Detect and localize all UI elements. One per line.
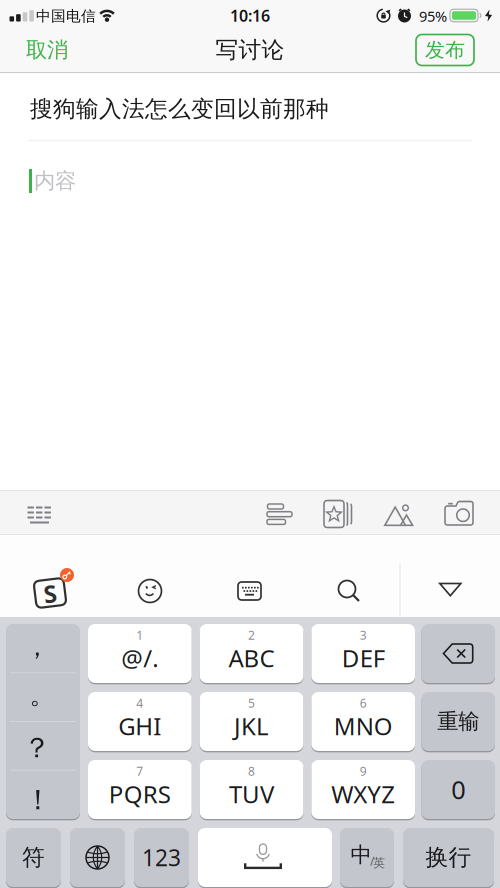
- staticText: 搜狗输入法怎么变回以前那种: [30, 95, 329, 123]
- button[interactable]: 格式: [22, 501, 56, 527]
- button[interactable]: 拍照: [445, 501, 475, 527]
- staticText: @/.: [121, 642, 158, 674]
- staticText: MNO: [334, 710, 393, 742]
- staticText: 1: [136, 627, 143, 643]
- button[interactable]: 取消: [12, 30, 82, 70]
- staticText: 6: [360, 695, 367, 711]
- staticText: TUV: [229, 778, 274, 810]
- button[interactable]: 123: [134, 828, 189, 887]
- staticText: JKL: [234, 710, 269, 742]
- button[interactable]: DEF: [311, 624, 415, 683]
- button[interactable]: PQRS: [88, 760, 192, 819]
- button[interactable]: 换行: [403, 828, 494, 887]
- button[interactable]: WXYZ: [311, 760, 415, 819]
- staticText: 95%: [419, 6, 447, 26]
- staticText: 发布: [425, 38, 465, 62]
- button[interactable]: 搜狗输入法: [26, 567, 78, 613]
- staticText: GHI: [118, 710, 161, 742]
- staticText: 重输: [437, 708, 479, 735]
- staticText: 换行: [425, 844, 471, 871]
- staticText: S: [43, 578, 56, 609]
- staticText: 中: [350, 842, 371, 868]
- staticText: /: [370, 853, 374, 869]
- button[interactable]: 标点: [6, 624, 80, 819]
- button[interactable]: JKL: [200, 692, 303, 751]
- button[interactable]: 表情: [137, 578, 163, 604]
- button[interactable]: 0: [421, 760, 495, 819]
- button[interactable]: 删除: [421, 624, 495, 683]
- staticText: 2: [248, 627, 255, 643]
- button[interactable]: 卡片: [323, 499, 355, 529]
- button[interactable]: 重输: [421, 692, 495, 751]
- staticText: ABC: [228, 642, 274, 674]
- button[interactable]: 图片: [384, 502, 416, 526]
- staticText: 10:16: [230, 5, 270, 26]
- staticText: 5: [248, 695, 255, 711]
- staticText: 英: [373, 856, 385, 870]
- button[interactable]: 中/英: [340, 828, 394, 887]
- button[interactable]: 排版: [265, 502, 293, 526]
- staticText: 。: [29, 679, 54, 710]
- staticText: WXYZ: [331, 778, 395, 810]
- button[interactable]: ABC: [200, 624, 303, 683]
- staticText: 取消: [26, 37, 68, 63]
- staticText: DEF: [342, 642, 385, 674]
- staticText: 7: [136, 763, 143, 779]
- staticText: 0: [451, 773, 465, 806]
- button[interactable]: 切换输入法: [70, 828, 125, 887]
- staticText: 符: [22, 844, 45, 871]
- staticText: ？: [23, 731, 51, 765]
- button[interactable]: 发布: [416, 34, 474, 65]
- button[interactable]: 空格: [198, 828, 332, 887]
- staticText: ，: [24, 631, 49, 662]
- staticText: 9: [360, 763, 367, 779]
- button[interactable]: TUV: [200, 760, 303, 819]
- staticText: 内容: [34, 168, 76, 194]
- staticText: 8: [248, 763, 255, 779]
- button[interactable]: @/.: [88, 624, 192, 683]
- button[interactable]: 键盘切换: [236, 580, 262, 602]
- staticText: 123: [142, 842, 181, 872]
- button[interactable]: 符: [6, 828, 61, 887]
- staticText: ！: [24, 783, 52, 817]
- staticText: PQRS: [109, 778, 171, 810]
- button[interactable]: MNO: [311, 692, 415, 751]
- staticText: 4: [136, 695, 143, 711]
- button[interactable]: GHI: [88, 692, 192, 751]
- button[interactable]: 搜索: [337, 579, 361, 603]
- button[interactable]: 收起键盘: [439, 582, 463, 597]
- staticText: 写讨论: [215, 36, 284, 64]
- staticText: 3: [360, 627, 367, 643]
- staticText: 中国电信: [36, 7, 96, 25]
